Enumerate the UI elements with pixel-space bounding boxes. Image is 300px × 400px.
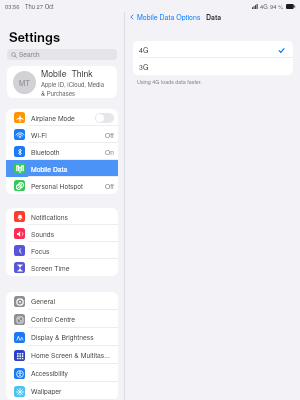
button[interactable]: Bluetooth	[6, 143, 118, 160]
button[interactable]: Control Centre	[6, 310, 118, 328]
button[interactable]: Airplane Mode	[6, 109, 118, 126]
staticText: Bluetooth	[31, 147, 103, 157]
staticText: Airplane Mode	[31, 113, 95, 123]
staticText: Mobile Think	[41, 67, 93, 79]
button[interactable]: 3G	[133, 58, 293, 75]
staticText: Mobile Data	[31, 164, 114, 174]
staticText: Settings	[9, 27, 61, 46]
button[interactable]: Personal Hotspot	[6, 177, 118, 194]
staticText: General	[31, 296, 114, 306]
staticText: Focus	[31, 246, 114, 256]
button[interactable]: Accessibility	[6, 364, 118, 382]
staticText: Using 4G loads data faster.	[137, 78, 202, 86]
staticText: Personal Hotspot	[31, 181, 103, 191]
staticText: 94 %	[270, 2, 284, 10]
button[interactable]: Wallpaper	[6, 382, 118, 400]
staticText: Control Centre	[31, 314, 114, 324]
staticText: Mobile Data Options	[137, 12, 201, 22]
staticText: Off	[105, 130, 114, 139]
button[interactable]: Wi-Fi	[6, 126, 118, 143]
staticText: Off	[105, 181, 114, 190]
staticText: MT	[19, 77, 30, 88]
button[interactable]: MT	[7, 66, 117, 98]
staticText: Screen Time	[31, 263, 114, 273]
button[interactable]: Notifications	[6, 208, 118, 225]
staticText: Search	[19, 50, 40, 59]
button[interactable]: Search	[7, 49, 117, 60]
staticText: 4G	[260, 2, 268, 10]
staticText: Display & Brightness	[31, 332, 114, 342]
staticText: 4G	[139, 45, 149, 55]
button[interactable]: Mobile Data Options	[128, 12, 202, 22]
staticText: Notifications	[31, 212, 114, 222]
staticText: Data	[206, 12, 222, 22]
button[interactable]: Display & Brightness	[6, 328, 118, 346]
staticText: & Purchases	[41, 89, 75, 98]
staticText: 3G	[139, 62, 149, 72]
button[interactable]: Screen Time	[6, 259, 118, 276]
button[interactable]: General	[6, 292, 118, 310]
staticText: Wallpaper	[31, 386, 114, 396]
staticText: Thu 27 Oct	[25, 2, 54, 10]
staticText: Home Screen & Multitas...	[31, 350, 114, 360]
staticText: Wi-Fi	[31, 130, 103, 140]
button[interactable]: Focus	[6, 242, 118, 259]
button[interactable]: Home Screen & Multitas...	[6, 346, 118, 364]
button[interactable]: Mobile Data	[6, 160, 118, 177]
staticText: 03:56	[5, 2, 20, 10]
staticText: On	[105, 147, 114, 156]
button[interactable]: Sounds	[6, 225, 118, 242]
button[interactable]: 4G	[133, 41, 293, 58]
staticText: Sounds	[31, 229, 114, 239]
staticText: Apple ID, iCloud, Media	[41, 80, 105, 89]
staticText: Accessibility	[31, 368, 114, 378]
